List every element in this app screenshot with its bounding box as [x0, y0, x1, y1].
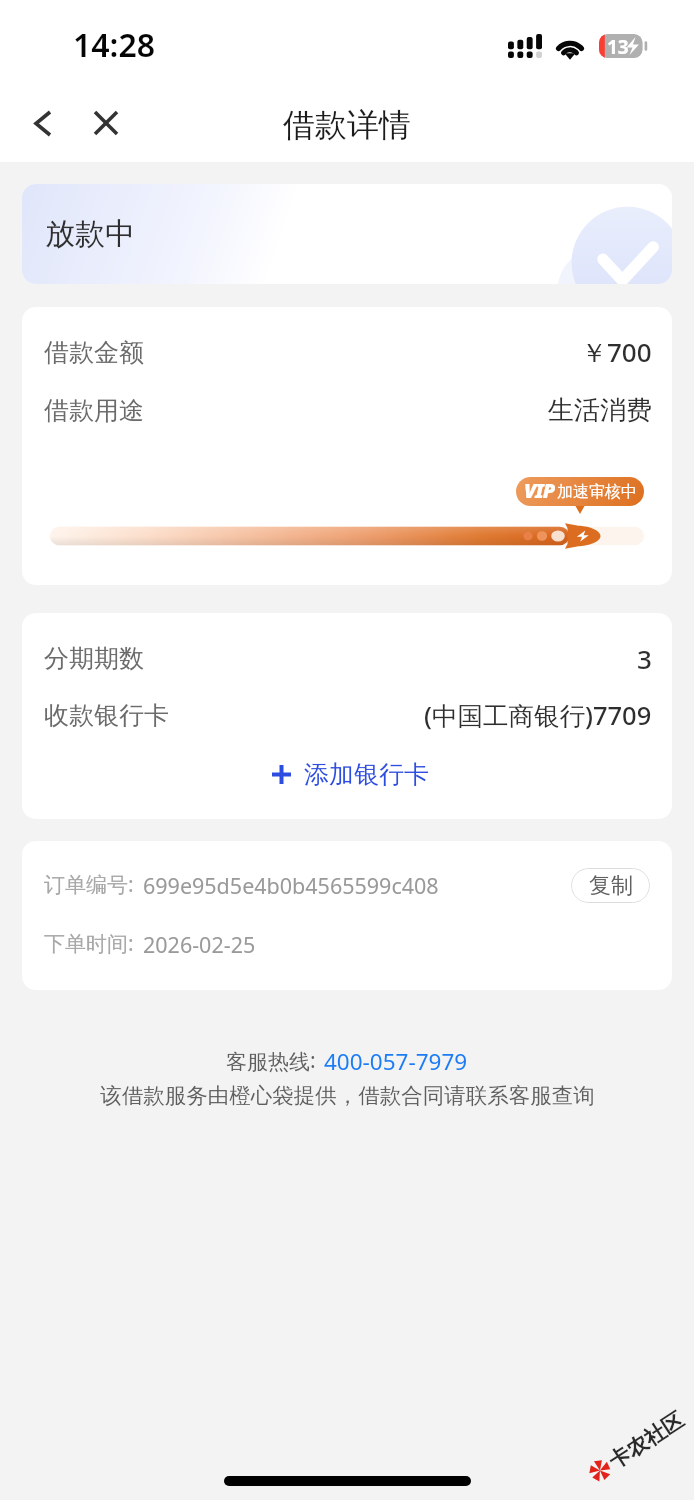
staticText: 该借款服务由橙心袋提供，借款合同请联系客服查询 — [100, 1082, 595, 1109]
button[interactable]: Back — [20, 100, 66, 146]
staticText: VIP — [524, 477, 555, 504]
staticText: 13 — [607, 34, 629, 58]
staticText: 699e95d5e4b0b4565599c408 — [143, 871, 439, 900]
staticText: 借款用途 — [44, 395, 144, 426]
button[interactable]: 400-057-7979 — [324, 1046, 468, 1077]
staticText: 卡农社区 — [604, 1407, 688, 1474]
staticText: 2026-02-25 — [143, 930, 256, 959]
staticText: 生活消费 — [548, 394, 652, 427]
staticText: : — [128, 870, 134, 899]
staticText: 复制 — [589, 872, 633, 900]
staticText: : — [128, 929, 134, 958]
staticText: 放款中 — [45, 215, 135, 253]
staticText: 收款银行卡 — [44, 700, 169, 731]
staticText: 借款详情 — [283, 105, 411, 145]
staticText: ￥700 — [581, 334, 652, 370]
button[interactable]: Close — [83, 100, 129, 146]
staticText: 加速审核中 — [557, 482, 637, 502]
button[interactable]: 复制 — [571, 868, 650, 903]
staticText: 客服热线 — [226, 1049, 310, 1075]
staticText: (中国工商银行)7709 — [424, 698, 652, 733]
staticText: 添加银行卡 — [304, 759, 429, 790]
staticText: : — [310, 1046, 316, 1075]
staticText: 下单时间 — [44, 931, 128, 957]
button[interactable]: 添加银行卡 — [252, 746, 449, 802]
staticText: 3 — [637, 641, 652, 676]
staticText: 订单编号 — [44, 872, 128, 898]
staticText: 14:28 — [73, 23, 156, 67]
staticText: 分期期数 — [44, 643, 144, 674]
staticText: 借款金额 — [44, 337, 144, 368]
